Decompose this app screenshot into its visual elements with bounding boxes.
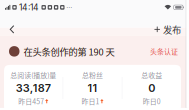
staticText: ··· (66, 3, 72, 12)
staticText: 发布 (163, 23, 181, 36)
staticText: 总阅读(播放)量 (10, 70, 56, 80)
staticText: 总收益 (141, 70, 162, 80)
staticText: 昨日457 (18, 96, 44, 106)
staticText: 头条认证 (150, 46, 178, 56)
button[interactable]: 发布 (151, 20, 184, 38)
button[interactable]: 总收益 (122, 70, 181, 106)
staticText: 11 (87, 81, 97, 95)
staticText: 33,187 (16, 81, 51, 95)
staticText: 昨日0 (143, 96, 161, 106)
staticText: 昨日1 (81, 96, 99, 106)
button[interactable]: 头条认证 (148, 44, 180, 58)
staticText: 总粉丝 (82, 70, 103, 80)
staticText: 0 (148, 81, 155, 95)
staticText: 在头条创作的第 190 天 (23, 45, 114, 58)
button[interactable]: 总粉丝 (63, 70, 122, 106)
staticText: 14:14 (19, 2, 39, 12)
button[interactable]: Back (4, 20, 20, 38)
button[interactable]: 总阅读(播放)量 (4, 70, 63, 106)
